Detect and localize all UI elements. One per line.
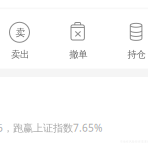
- button[interactable]: 卖: [0, 20, 44, 66]
- staticText: 卖: [15, 26, 25, 39]
- staticText: 6，跑赢上证指数7.65%: [0, 121, 102, 135]
- button[interactable]: 持仓: [111, 20, 148, 66]
- staticText: 撤单: [69, 48, 87, 60]
- staticText: 持仓: [127, 48, 145, 60]
- button[interactable]: 撤单: [53, 20, 103, 66]
- staticText: 卖出: [11, 48, 29, 60]
